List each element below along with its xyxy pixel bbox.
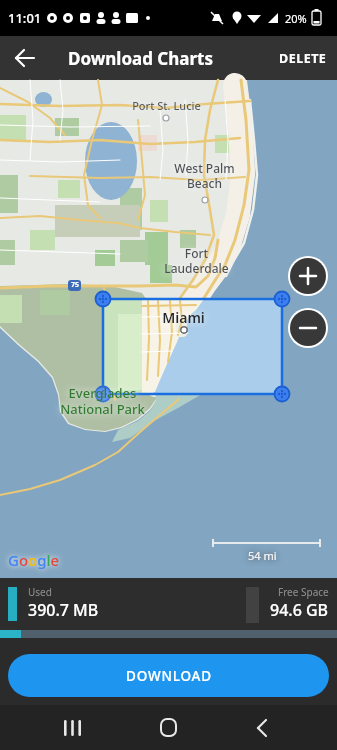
staticText: 75 xyxy=(71,280,80,290)
staticText: 390.7 MB xyxy=(28,599,99,621)
staticText: DELETE xyxy=(279,50,327,67)
button[interactable] xyxy=(144,705,192,750)
button[interactable] xyxy=(6,39,44,77)
staticText: Google xyxy=(8,550,60,570)
staticText: Used xyxy=(28,585,52,599)
staticText: Free Space xyxy=(278,585,329,599)
button[interactable]: DOWNLOAD xyxy=(8,654,329,697)
staticText: Everglades National Park xyxy=(60,384,145,417)
staticText: 94.6 GB xyxy=(270,599,329,621)
staticText: Miami xyxy=(162,308,205,327)
staticText: 11:01 xyxy=(8,9,42,27)
button[interactable] xyxy=(238,705,286,750)
staticText: West Palm Beach xyxy=(174,160,235,191)
staticText: Fort Lauderdale xyxy=(164,245,229,276)
staticText: Download Charts xyxy=(68,47,214,70)
button[interactable]: DELETE xyxy=(269,38,337,79)
button[interactable] xyxy=(48,705,96,750)
staticText: 54 mi xyxy=(248,548,277,563)
staticText: 20% xyxy=(285,11,307,26)
button[interactable] xyxy=(290,310,326,346)
staticText: DOWNLOAD xyxy=(126,667,212,685)
button[interactable] xyxy=(290,258,326,294)
staticText: Port St. Lucie xyxy=(132,98,201,113)
